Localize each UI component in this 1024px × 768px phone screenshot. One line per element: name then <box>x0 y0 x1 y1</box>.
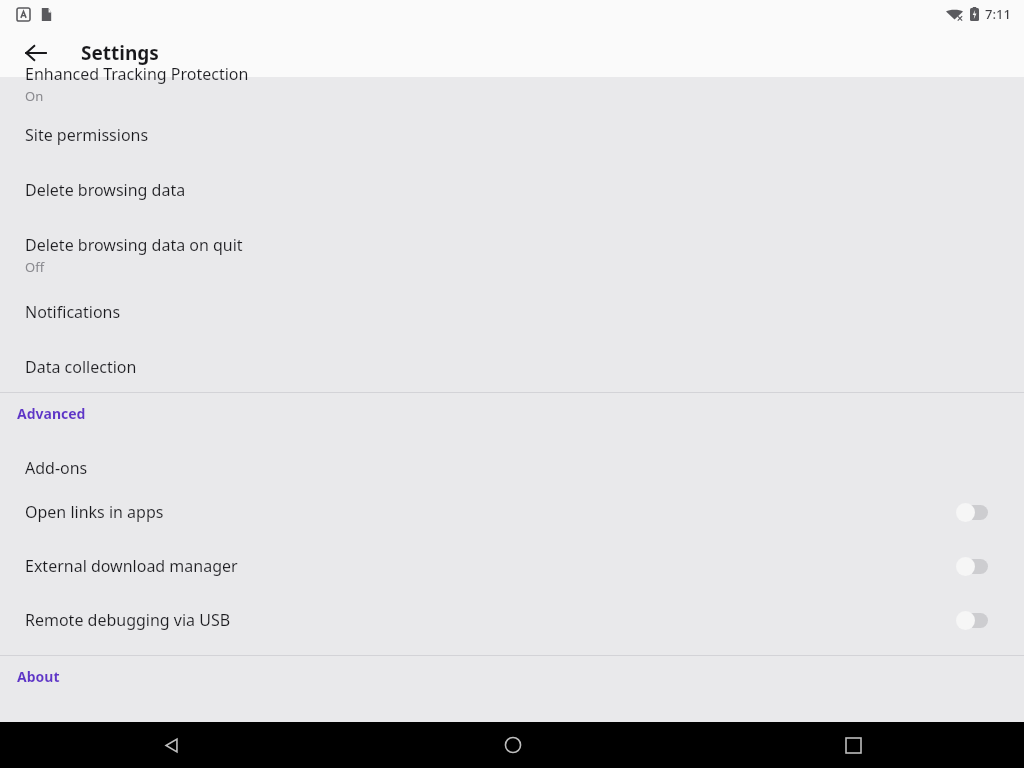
button[interactable]: Delete browsing data on quit <box>0 207 1024 282</box>
staticText: Off <box>25 258 45 276</box>
staticText: Data collection <box>25 356 137 378</box>
staticText: Notifications <box>25 301 121 323</box>
button[interactable]: Notifications <box>0 282 1024 329</box>
button[interactable]: Back <box>0 722 342 768</box>
button[interactable]: Site permissions <box>0 104 1024 152</box>
button[interactable]: Remote debugging via USB <box>0 593 1024 647</box>
button[interactable]: Add-ons <box>0 433 1024 485</box>
staticText: Advanced <box>17 404 86 423</box>
staticText: Remote debugging via USB <box>25 609 956 631</box>
staticText: External download manager <box>25 555 956 577</box>
staticText: 7:11 <box>985 5 1011 23</box>
staticText: Delete browsing data on quit <box>25 234 243 256</box>
staticText: Settings <box>81 40 159 66</box>
button[interactable]: External download manager <box>0 539 1024 593</box>
button[interactable]: Delete browsing data <box>0 152 1024 207</box>
button[interactable]: Home <box>342 722 683 768</box>
staticText: Site permissions <box>25 124 149 146</box>
staticText: Enhanced Tracking Protection <box>25 63 249 85</box>
button[interactable]: Back <box>12 29 60 77</box>
staticText: Add-ons <box>25 457 88 479</box>
staticText: Open links in apps <box>25 501 956 523</box>
button[interactable]: Data collection <box>0 329 1024 384</box>
staticText: Delete browsing data <box>25 179 186 201</box>
button[interactable]: Open links in apps <box>0 485 1024 539</box>
staticText: About <box>17 667 60 686</box>
button[interactable]: Recent apps <box>683 722 1024 768</box>
staticText: On <box>25 87 44 105</box>
